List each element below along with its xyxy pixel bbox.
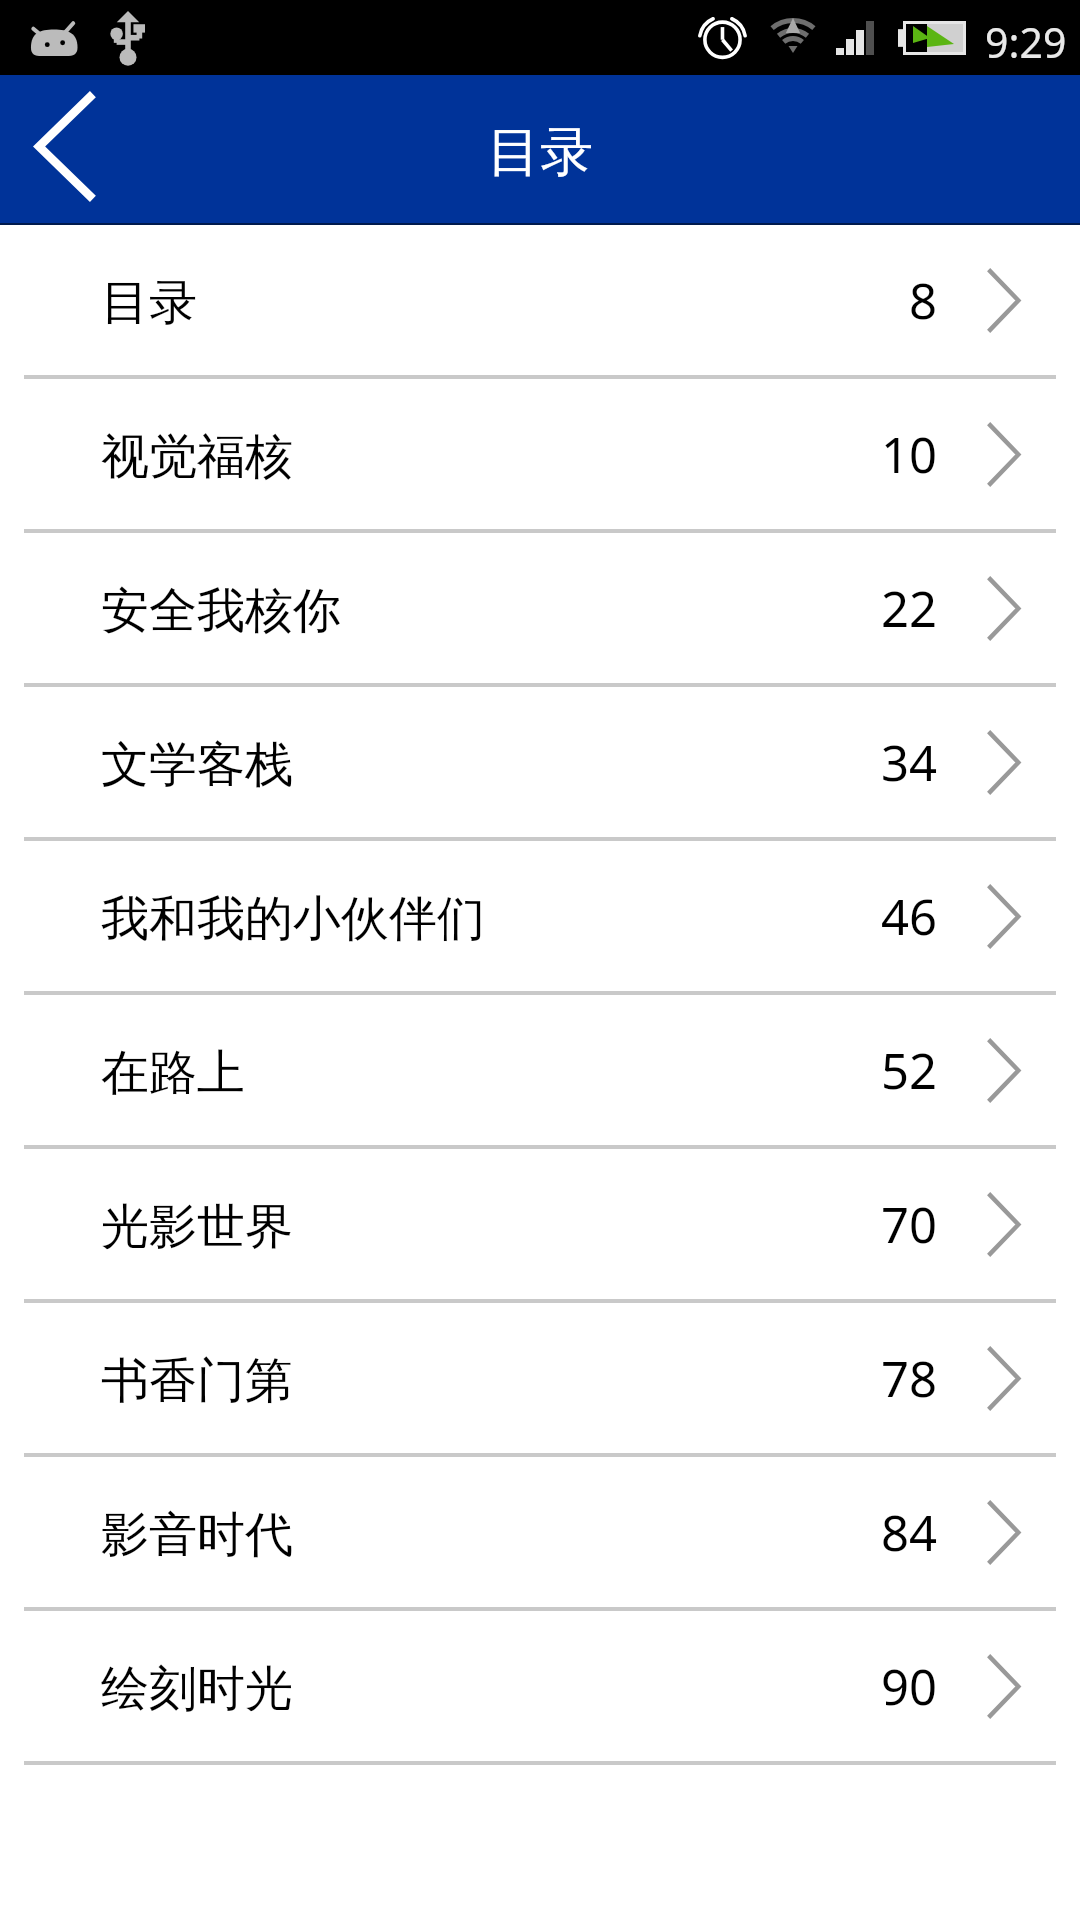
staticText: 文学客栈 — [101, 735, 293, 795]
staticText: 视觉福核 — [101, 427, 293, 487]
staticText: 我和我的小伙伴们 — [101, 889, 485, 949]
button[interactable]: 光影世界 — [0, 1149, 1080, 1299]
button[interactable]: 影音时代 — [0, 1457, 1080, 1607]
staticText: 在路上 — [101, 1043, 245, 1103]
staticText: 绘刻时光 — [101, 1659, 293, 1719]
staticText: 34 — [881, 729, 938, 796]
button[interactable]: 安全我核你 — [0, 533, 1080, 683]
staticText: 10 — [881, 421, 938, 488]
staticText: 70 — [881, 1191, 938, 1258]
staticText: 9:29 — [985, 14, 1067, 70]
staticText: 目录 — [101, 273, 197, 333]
staticText: 书香门第 — [101, 1351, 293, 1411]
button[interactable]: 绘刻时光 — [0, 1611, 1080, 1761]
staticText: 46 — [881, 883, 938, 950]
button[interactable]: 视觉福核 — [0, 379, 1080, 529]
staticText: 光影世界 — [101, 1197, 293, 1257]
button[interactable]: Back — [0, 75, 130, 225]
button[interactable]: 文学客栈 — [0, 687, 1080, 837]
staticText: 84 — [881, 1499, 938, 1566]
staticText: 52 — [881, 1037, 938, 1104]
staticText: 90 — [881, 1653, 938, 1720]
staticText: 影音时代 — [101, 1505, 293, 1565]
button[interactable]: 我和我的小伙伴们 — [0, 841, 1080, 991]
staticText: 22 — [881, 575, 938, 642]
staticText: 8 — [909, 267, 938, 334]
button[interactable]: 目录 — [0, 225, 1080, 375]
button[interactable]: 在路上 — [0, 995, 1080, 1145]
staticText: 目录 — [487, 119, 593, 186]
staticText: 安全我核你 — [101, 581, 341, 641]
staticText: 78 — [881, 1345, 938, 1412]
button[interactable]: 书香门第 — [0, 1303, 1080, 1453]
